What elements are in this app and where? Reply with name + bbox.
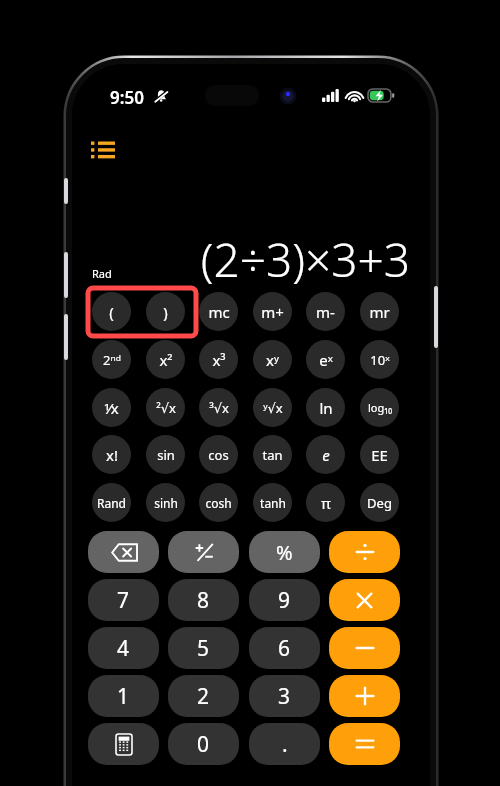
button[interactable]: 3 bbox=[249, 675, 320, 717]
button[interactable]: x! bbox=[92, 435, 131, 474]
staticText: x! bbox=[106, 445, 118, 465]
staticText: . bbox=[282, 730, 288, 759]
button[interactable]: tan bbox=[253, 435, 292, 474]
staticText: 6 bbox=[278, 634, 291, 663]
staticText: Rad bbox=[92, 266, 112, 281]
button[interactable]: x² bbox=[146, 340, 185, 379]
staticText: m- bbox=[316, 302, 335, 322]
staticText: 3 bbox=[278, 682, 291, 711]
button[interactable]: Equals bbox=[329, 723, 400, 765]
staticText: ⅟x bbox=[104, 398, 119, 418]
staticText: ) bbox=[163, 302, 168, 322]
button[interactable]: 7 bbox=[88, 579, 159, 621]
button[interactable]: 2 bbox=[168, 675, 239, 717]
button[interactable]: 4 bbox=[88, 627, 159, 669]
button[interactable]: mr bbox=[360, 292, 399, 331]
button[interactable]: 6 bbox=[249, 627, 320, 669]
button[interactable]: ʸ√x bbox=[253, 388, 292, 427]
button[interactable]: . bbox=[249, 723, 320, 765]
button[interactable]: cos bbox=[199, 435, 238, 474]
staticText: ( bbox=[109, 302, 114, 322]
staticText: sinh bbox=[154, 495, 178, 511]
staticText: 1 bbox=[117, 682, 130, 711]
button[interactable]: sin bbox=[146, 435, 185, 474]
button[interactable]: EE bbox=[360, 435, 399, 474]
button[interactable]: cosh bbox=[199, 483, 238, 522]
staticText: mc bbox=[208, 302, 230, 322]
button[interactable]: ³√x bbox=[199, 388, 238, 427]
button[interactable]: ) bbox=[146, 292, 185, 331]
staticText: e bbox=[322, 445, 330, 465]
button[interactable]: Delete bbox=[88, 531, 159, 573]
staticText: π bbox=[321, 493, 331, 513]
button[interactable]: sinh bbox=[146, 483, 185, 522]
staticText: 4 bbox=[117, 634, 130, 663]
button[interactable]: m+ bbox=[253, 292, 292, 331]
staticText: 2ⁿᵈ bbox=[103, 351, 121, 369]
staticText: % bbox=[276, 539, 293, 566]
staticText: cos bbox=[208, 446, 229, 464]
button[interactable]: 5 bbox=[168, 627, 239, 669]
button[interactable]: ln bbox=[306, 388, 345, 427]
staticText: 10ˣ bbox=[370, 351, 390, 369]
staticText: 9:50 bbox=[110, 86, 144, 109]
button[interactable]: x³ bbox=[199, 340, 238, 379]
button[interactable]: 0 bbox=[168, 723, 239, 765]
staticText: ln bbox=[319, 398, 333, 418]
staticText: ²√x bbox=[156, 399, 176, 417]
staticText: mr bbox=[369, 302, 390, 322]
button[interactable]: ²√x bbox=[146, 388, 185, 427]
button[interactable]: log₁₀ bbox=[360, 388, 399, 427]
staticText: 0 bbox=[197, 730, 210, 759]
button[interactable]: m- bbox=[306, 292, 345, 331]
staticText: (2÷3)×3+3 bbox=[200, 228, 410, 284]
button[interactable]: Deg bbox=[360, 483, 399, 522]
staticText: Rand bbox=[97, 495, 126, 511]
staticText: 7 bbox=[117, 586, 130, 615]
staticText: log₁₀ bbox=[368, 400, 392, 415]
staticText: ʸ√x bbox=[263, 399, 283, 417]
button[interactable]: % bbox=[249, 531, 320, 573]
staticText: 9 bbox=[278, 586, 291, 615]
staticText: eˣ bbox=[319, 350, 333, 370]
button[interactable]: 10ˣ bbox=[360, 340, 399, 379]
staticText: xʸ bbox=[266, 350, 279, 370]
staticText: sin bbox=[157, 446, 175, 464]
staticText: tanh bbox=[260, 495, 286, 511]
button[interactable]: mc bbox=[199, 292, 238, 331]
button[interactable]: Divide bbox=[329, 531, 400, 573]
staticText: Deg bbox=[367, 494, 392, 512]
staticText: EE bbox=[371, 445, 388, 465]
staticText: 5 bbox=[197, 634, 210, 663]
button[interactable]: Multiply bbox=[329, 579, 400, 621]
button[interactable]: 9 bbox=[249, 579, 320, 621]
staticText: tan bbox=[262, 446, 283, 464]
button[interactable]: eˣ bbox=[306, 340, 345, 379]
button[interactable]: 8 bbox=[168, 579, 239, 621]
button[interactable]: e bbox=[306, 435, 345, 474]
button[interactable]: ( bbox=[92, 292, 131, 331]
button[interactable]: 2ⁿᵈ bbox=[92, 340, 131, 379]
button[interactable]: ⅟x bbox=[92, 388, 131, 427]
button[interactable]: 1 bbox=[88, 675, 159, 717]
button[interactable]: tanh bbox=[253, 483, 292, 522]
staticText: m+ bbox=[261, 302, 284, 322]
button[interactable]: Calculator bbox=[88, 723, 159, 765]
button[interactable]: History bbox=[86, 132, 120, 166]
button[interactable]: Minus bbox=[329, 627, 400, 669]
staticText: cosh bbox=[205, 495, 232, 511]
button[interactable]: xʸ bbox=[253, 340, 292, 379]
button[interactable]: Plus minus bbox=[168, 531, 239, 573]
staticText: ³√x bbox=[209, 399, 229, 417]
button[interactable]: Rand bbox=[92, 483, 131, 522]
staticText: 8 bbox=[197, 586, 210, 615]
staticText: 2 bbox=[197, 682, 210, 711]
staticText: x² bbox=[159, 350, 173, 370]
staticText: x³ bbox=[212, 350, 226, 370]
button[interactable]: π bbox=[306, 483, 345, 522]
button[interactable]: Plus bbox=[329, 675, 400, 717]
